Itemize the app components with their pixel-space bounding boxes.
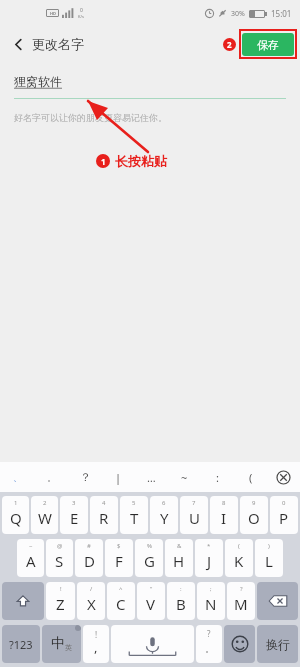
staticText: G (144, 551, 155, 571)
staticText: 4 (102, 499, 106, 507)
button[interactable]: 5 (120, 496, 148, 534)
staticText: 更改名字 (32, 36, 84, 52)
button[interactable]: 中 (42, 625, 81, 663)
button[interactable]: | (102, 462, 135, 492)
staticText: 。 (205, 643, 214, 654)
button[interactable]: * (195, 539, 223, 577)
staticText: @ (57, 542, 63, 550)
staticText: : (180, 585, 182, 593)
staticText: ? (207, 628, 211, 639)
staticText: L (265, 551, 273, 571)
button[interactable]: 7 (180, 496, 208, 534)
button[interactable]: 2 (31, 496, 58, 534)
staticText: K/s (78, 14, 84, 19)
staticText: 15:01 (271, 8, 292, 19)
button[interactable]: ; (197, 582, 225, 620)
staticText: F (115, 551, 123, 571)
staticText: / (90, 585, 93, 593)
staticText: ) (268, 542, 270, 550)
staticText: ~ (181, 470, 188, 485)
button[interactable]: 0 (270, 496, 298, 534)
staticText: N (205, 594, 217, 614)
staticText: M (234, 594, 248, 614)
button[interactable]: 。 (34, 462, 68, 492)
button[interactable]: ? (227, 582, 255, 620)
button[interactable]: ?123 (2, 625, 40, 663)
staticText: I (221, 508, 227, 528)
staticText: 0 (80, 7, 83, 14)
button[interactable]: 9 (240, 496, 268, 534)
staticText: P (279, 508, 289, 528)
staticText: A (26, 551, 36, 571)
button[interactable]: " (137, 582, 165, 620)
button[interactable]: 3 (60, 496, 88, 534)
button[interactable]: 4 (90, 496, 118, 534)
staticText: X (87, 594, 96, 614)
button[interactable]: ^ (107, 582, 135, 620)
staticText: Z (56, 594, 65, 614)
button[interactable]: ~ (168, 462, 201, 492)
staticText: Q (10, 508, 22, 528)
button[interactable]: ? (196, 625, 222, 663)
staticText: # (87, 542, 91, 550)
button[interactable]: Space (111, 625, 194, 663)
button[interactable]: / (77, 582, 105, 620)
button[interactable]: ？ (68, 462, 102, 492)
staticText: 好名字可以让你的朋友更容易记住你。 (14, 112, 167, 123)
button[interactable]: 8 (210, 496, 238, 534)
button[interactable]: : (167, 582, 195, 620)
staticText: O (248, 508, 260, 528)
button[interactable]: 保存 (242, 33, 294, 56)
staticText: 保存 (257, 38, 279, 52)
staticText: ? (240, 585, 243, 593)
button[interactable]: ( (225, 539, 253, 577)
button[interactable]: … (135, 462, 168, 492)
staticText: 1 (101, 156, 106, 167)
staticText: 5 (132, 499, 136, 507)
button[interactable]: Shift (2, 582, 44, 620)
button[interactable]: 6 (150, 496, 178, 534)
staticText: $ (117, 542, 121, 550)
button[interactable]: ( (234, 462, 267, 492)
button[interactable]: 1 (2, 496, 29, 534)
staticText: … (147, 470, 156, 485)
button[interactable]: & (165, 539, 193, 577)
staticText: V (146, 594, 156, 614)
staticText: 9 (252, 499, 256, 507)
button[interactable]: : (201, 462, 234, 492)
button[interactable]: Clear (267, 462, 300, 492)
staticText: D (84, 551, 95, 571)
staticText: ？ (80, 470, 91, 484)
button[interactable]: Backspace (257, 582, 298, 620)
staticText: | (115, 470, 122, 485)
button[interactable]: # (75, 539, 103, 577)
staticText: 6 (162, 499, 166, 507)
staticText: ; (210, 585, 212, 593)
staticText: * (207, 542, 211, 550)
staticText: 7 (192, 499, 196, 507)
staticText: 3 (72, 499, 76, 507)
button[interactable]: % (135, 539, 163, 577)
staticText: : (216, 470, 219, 485)
staticText: 长按粘贴 (115, 153, 167, 169)
staticText: 2 (43, 499, 47, 507)
button[interactable]: 换行 (257, 625, 298, 663)
button[interactable]: $ (105, 539, 133, 577)
button[interactable]: Back (8, 34, 29, 55)
button[interactable]: 、 (0, 462, 34, 492)
staticText: ( (238, 542, 240, 550)
staticText: 0 (282, 499, 286, 507)
button[interactable]: Emoji (224, 625, 255, 663)
button[interactable]: ! (83, 625, 109, 663)
button[interactable]: ! (46, 582, 75, 620)
button[interactable]: ~ (17, 539, 44, 577)
staticText: 、 (13, 472, 22, 483)
staticText: 8 (222, 499, 226, 507)
button[interactable]: ) (255, 539, 283, 577)
staticText: 换行 (266, 637, 290, 652)
staticText: 2 (227, 39, 232, 50)
staticText: T (130, 508, 139, 528)
staticText: HD (50, 11, 56, 16)
staticText: W (38, 508, 52, 528)
button[interactable]: @ (46, 539, 73, 577)
